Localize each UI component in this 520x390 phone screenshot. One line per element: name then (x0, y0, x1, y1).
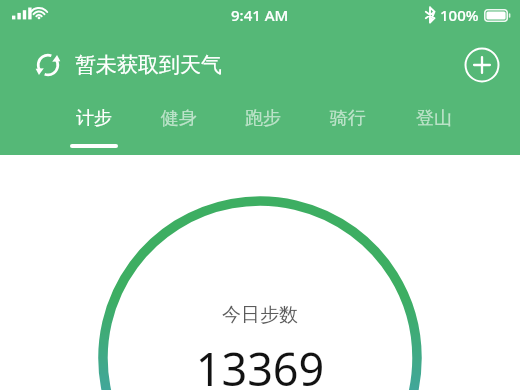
staticText: 登山 (416, 107, 452, 130)
staticText: 骑行 (330, 107, 366, 130)
staticText: 今日步数 (0, 303, 520, 327)
staticText: 计步 (76, 107, 112, 130)
staticText: 跑步 (245, 107, 281, 130)
button[interactable]: Add (464, 47, 500, 83)
staticText: 9:41 AM (231, 5, 289, 25)
button[interactable]: 骑行 (314, 102, 382, 155)
button[interactable]: 跑步 (229, 102, 297, 155)
other: Refresh weather (34, 51, 62, 79)
staticText: 13369 (0, 338, 520, 390)
button[interactable]: Refresh weather (34, 51, 228, 79)
button[interactable]: 计步 (60, 102, 128, 155)
button[interactable]: 登山 (400, 102, 468, 155)
staticText: 暂未获取到天气 (75, 52, 222, 78)
button[interactable]: 健身 (145, 102, 213, 155)
staticText: 健身 (161, 107, 197, 130)
staticText: 100% (440, 5, 479, 25)
